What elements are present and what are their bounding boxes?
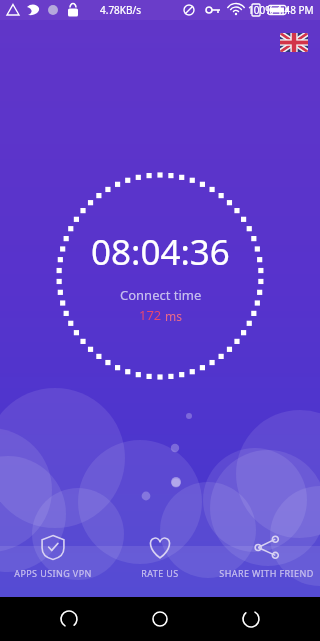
staticText: Connect time	[120, 286, 202, 304]
staticText: 08:04:36	[91, 228, 230, 276]
button[interactable]: Recents	[47, 597, 91, 641]
button[interactable]: SHARE WITH FRIEND	[213, 530, 320, 583]
staticText: 172	[139, 306, 162, 324]
button[interactable]: APPS USING VPN	[0, 530, 106, 583]
staticText: APPS USING VPN	[14, 567, 92, 579]
button[interactable]: Select country	[280, 33, 308, 52]
staticText: RATE US	[141, 567, 179, 579]
staticText: SHARE WITH FRIEND	[219, 567, 314, 579]
staticText: ms	[165, 308, 182, 324]
staticText: 4.78KB/s	[100, 3, 142, 17]
button[interactable]: RATE US	[106, 530, 213, 583]
button[interactable]: Back	[229, 597, 273, 641]
button[interactable]: Home	[138, 597, 182, 641]
staticText: 100% 4:48 PM	[248, 3, 314, 17]
